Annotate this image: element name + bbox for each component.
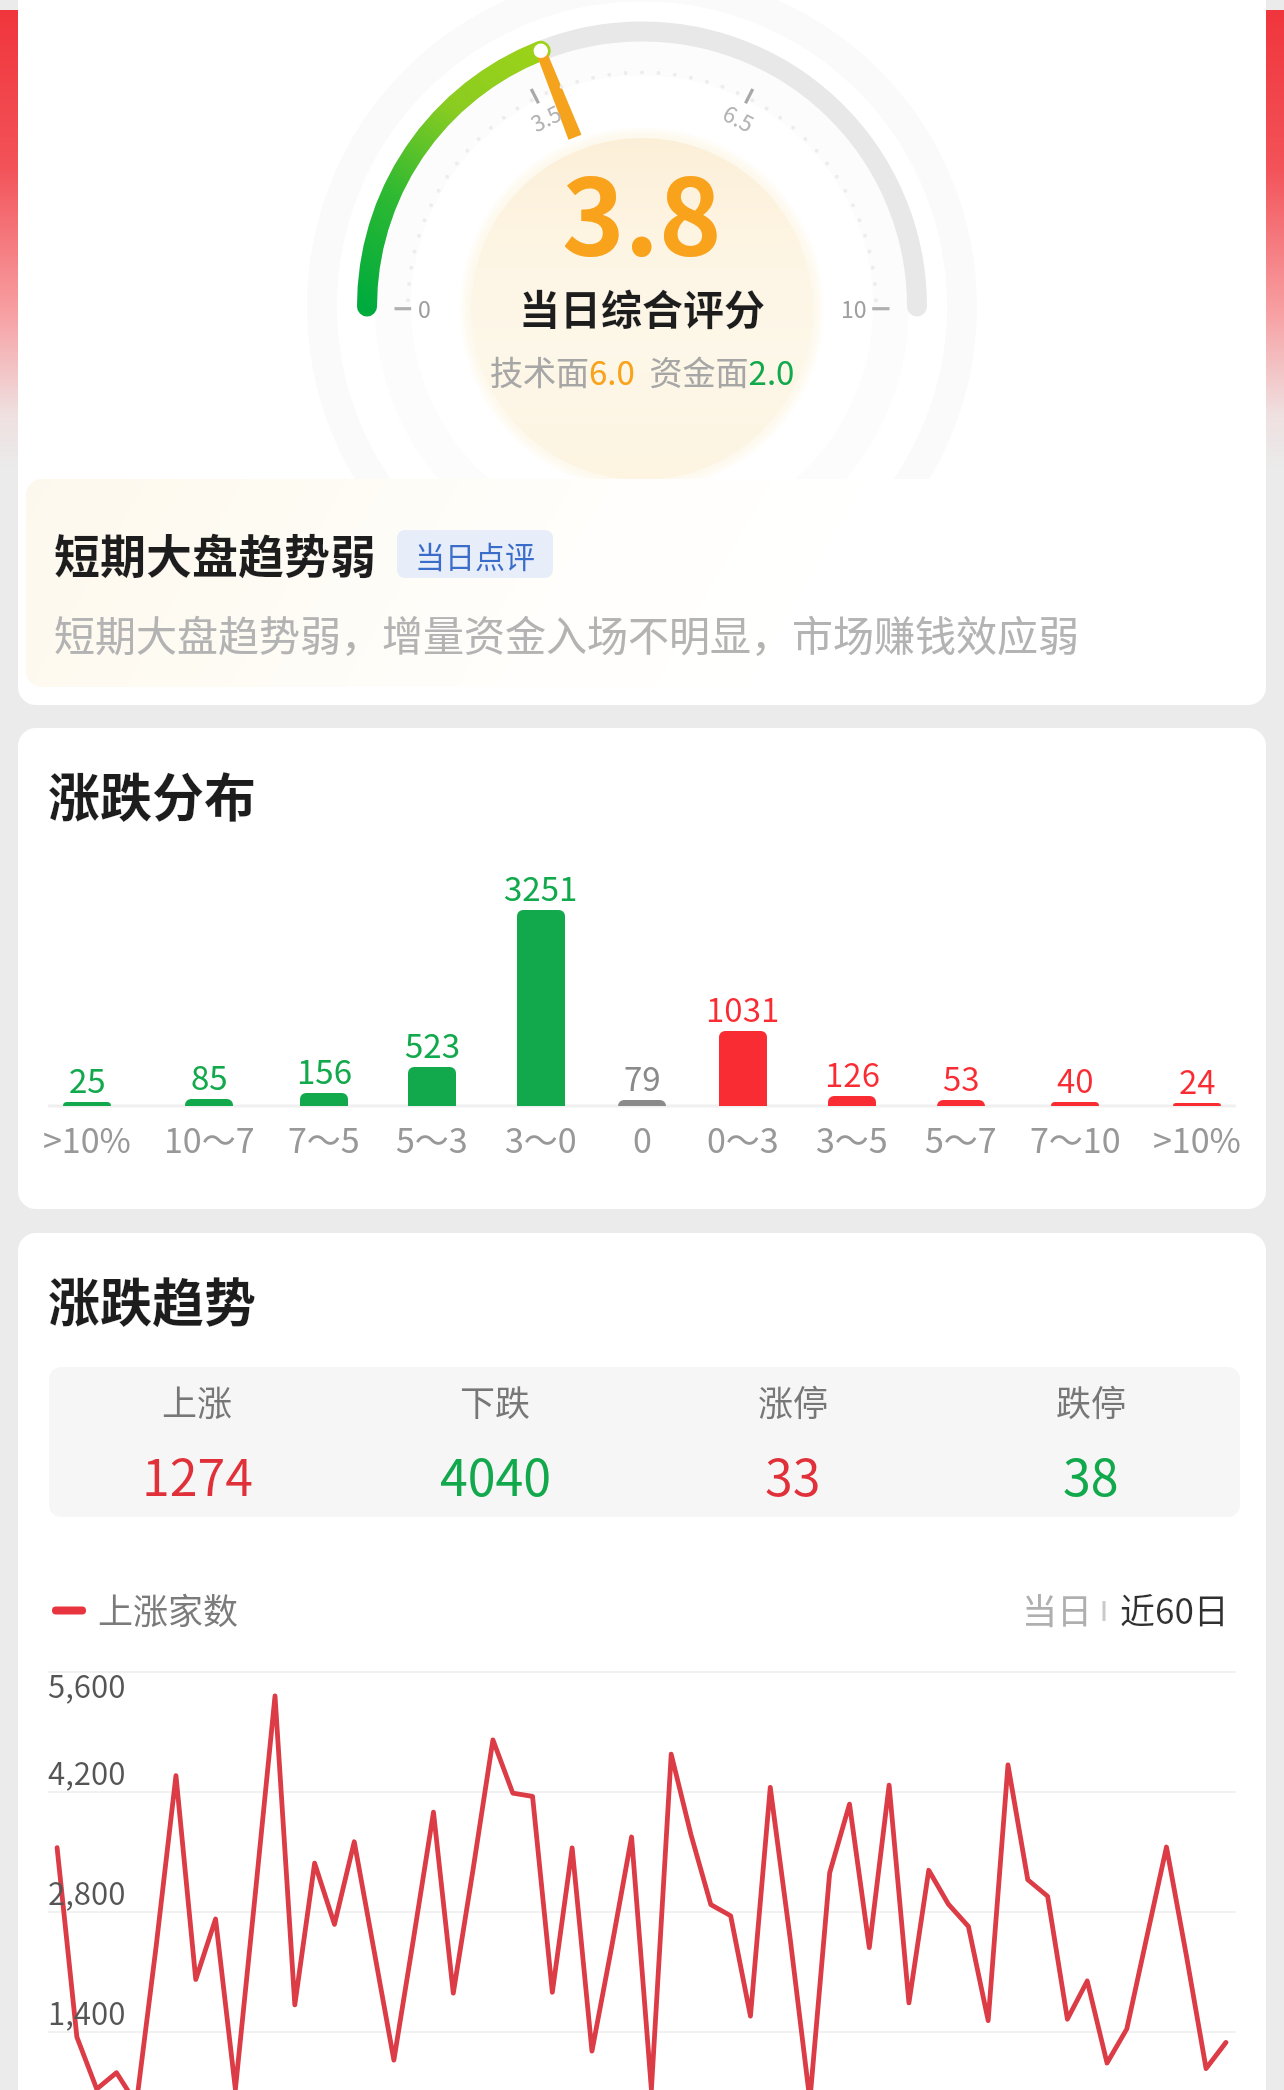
staticText: 10 bbox=[841, 291, 867, 324]
button[interactable]: 短期大盘趋势弱 bbox=[26, 479, 1258, 687]
staticText: 当日点评 bbox=[415, 533, 535, 576]
button[interactable]: 涨停 bbox=[644, 1375, 942, 1510]
staticText: 3.5 bbox=[524, 95, 566, 138]
button[interactable]: 近60日 bbox=[1120, 1583, 1229, 1634]
button[interactable]: 上涨 bbox=[49, 1375, 346, 1510]
staticText: 126 bbox=[825, 1049, 880, 1087]
staticText: 上涨 bbox=[162, 1375, 233, 1426]
staticText: 跌停 bbox=[1056, 1375, 1127, 1426]
staticText: 1274 bbox=[142, 1438, 253, 1510]
staticText: 技术面6.0 资金面2.0 bbox=[490, 347, 795, 395]
staticText: 4040 bbox=[440, 1438, 551, 1510]
staticText: 5,600 bbox=[48, 1662, 126, 1707]
staticText: 53 bbox=[943, 1053, 980, 1091]
staticText: 3～5 bbox=[816, 1114, 888, 1163]
button[interactable]: 当日 bbox=[1022, 1583, 1093, 1634]
staticText: 0 bbox=[633, 1114, 652, 1163]
staticText: 0～3 bbox=[707, 1114, 779, 1163]
staticText: 5～3 bbox=[396, 1114, 468, 1163]
staticText: 4,200 bbox=[48, 1749, 126, 1794]
staticText: 1031 bbox=[706, 984, 780, 1022]
staticText: >10% bbox=[1153, 1114, 1241, 1163]
staticText: 7～5 bbox=[288, 1114, 360, 1163]
staticText: 33 bbox=[765, 1438, 821, 1510]
staticText: 24 bbox=[1179, 1056, 1216, 1094]
staticText: 短期大盘趋势弱 bbox=[54, 520, 376, 587]
staticText: 1,400 bbox=[48, 1989, 126, 2034]
staticText: 涨跌趋势 bbox=[48, 1262, 257, 1337]
staticText: >10% bbox=[43, 1114, 131, 1163]
staticText: 3～0 bbox=[505, 1114, 577, 1163]
staticText: 涨跌分布 bbox=[48, 757, 257, 832]
staticText: 3.8 bbox=[562, 133, 722, 286]
staticText: 523 bbox=[405, 1020, 460, 1058]
staticText: 0 bbox=[418, 291, 431, 324]
staticText: 涨停 bbox=[758, 1375, 829, 1426]
button[interactable]: 下跌 bbox=[346, 1375, 644, 1510]
staticText: 79 bbox=[624, 1053, 661, 1091]
staticText: 40 bbox=[1057, 1055, 1094, 1093]
staticText: 5～7 bbox=[925, 1114, 997, 1163]
staticText: 156 bbox=[297, 1046, 352, 1084]
staticText: 当日综合评分 bbox=[519, 277, 765, 336]
staticText: 7～10 bbox=[1030, 1114, 1121, 1163]
staticText: 上涨家数 bbox=[98, 1583, 239, 1634]
staticText: 6.5 bbox=[718, 96, 760, 138]
staticText: 下跌 bbox=[460, 1375, 531, 1426]
staticText: 2,800 bbox=[48, 1869, 126, 1914]
staticText: 短期大盘趋势弱，增量资金入场不明显，市场赚钱效应弱 bbox=[54, 603, 1079, 662]
button[interactable]: 跌停 bbox=[942, 1375, 1240, 1510]
staticText: 10～7 bbox=[164, 1114, 255, 1163]
staticText: 85 bbox=[191, 1052, 228, 1090]
staticText: 38 bbox=[1063, 1438, 1119, 1510]
staticText: 25 bbox=[69, 1055, 106, 1093]
staticText: 3251 bbox=[504, 863, 578, 901]
